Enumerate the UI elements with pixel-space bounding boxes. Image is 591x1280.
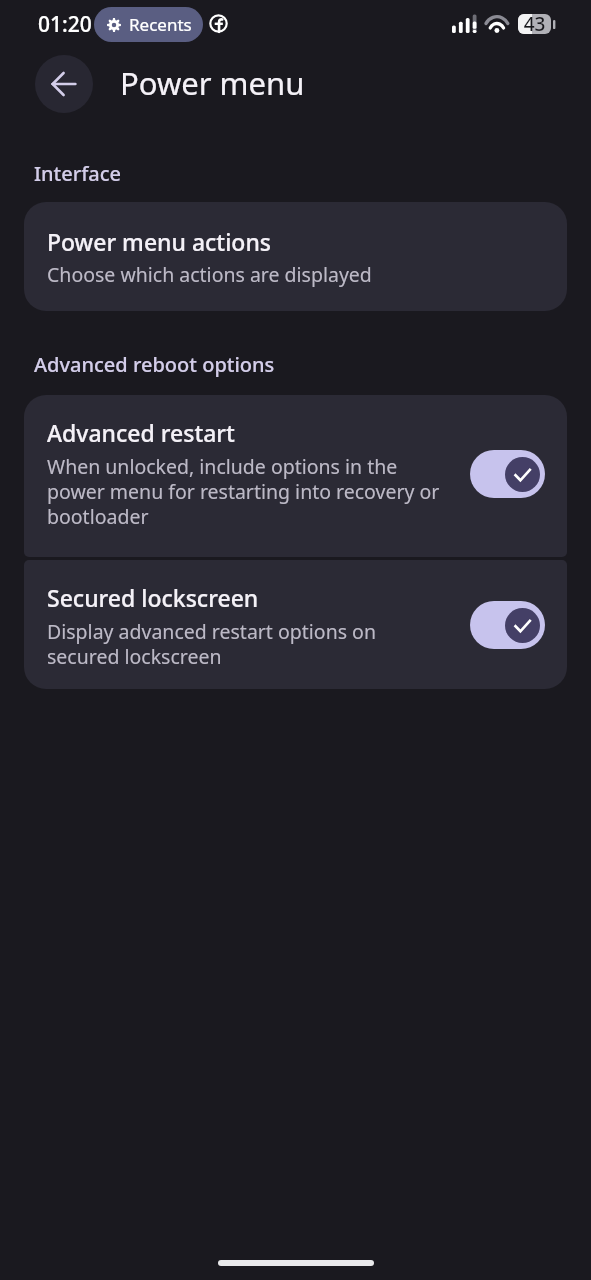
button[interactable]: Toggle switch, on (470, 450, 545, 498)
staticText: Recents (129, 13, 192, 36)
staticText: 43 (518, 11, 551, 31)
button[interactable]: Recents (94, 7, 203, 42)
staticText: Choose which actions are displayed (47, 261, 372, 288)
staticText: Power menu actions (47, 226, 272, 257)
staticText: Display advanced restart options on secu… (47, 618, 376, 669)
other: App icon (209, 14, 228, 33)
staticText: Power menu (120, 62, 305, 104)
button[interactable]: Power menu actions (24, 202, 567, 311)
button[interactable]: Navigate back (35, 55, 93, 113)
staticText: Interface (34, 160, 122, 187)
button[interactable]: Toggle switch, on (470, 601, 545, 649)
staticText: Advanced restart (47, 417, 235, 448)
staticText: When unlocked, include options in the po… (47, 453, 440, 529)
staticText: Advanced reboot options (34, 351, 275, 378)
button[interactable]: Secured lockscreen (24, 560, 567, 689)
staticText: Secured lockscreen (47, 582, 259, 613)
button[interactable]: Advanced restart (24, 395, 567, 557)
staticText: 01:20 (38, 10, 92, 39)
